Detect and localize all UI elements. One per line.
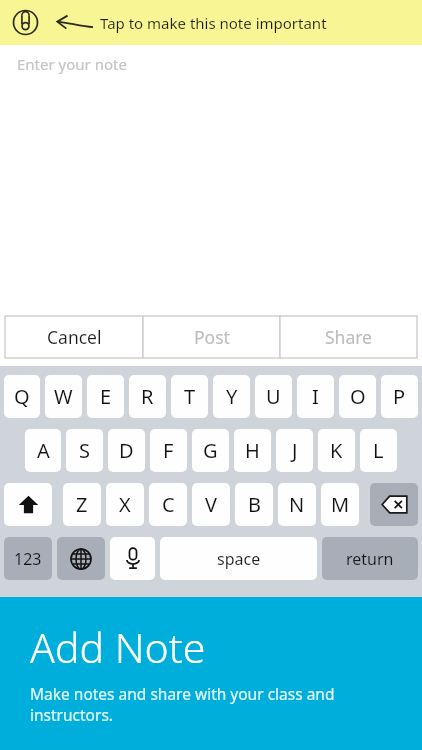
button[interactable]: S — [66, 429, 103, 472]
button[interactable]: Post — [143, 316, 280, 358]
button[interactable]: Switch keyboard language — [57, 537, 105, 580]
staticText: U — [266, 383, 281, 410]
staticText: I — [312, 383, 319, 410]
staticText: T — [184, 383, 196, 410]
button[interactable]: C — [149, 483, 187, 526]
button[interactable]: 123 — [4, 537, 52, 580]
button[interactable]: F — [150, 429, 187, 472]
button[interactable]: I — [297, 375, 334, 418]
staticText: return — [346, 548, 394, 570]
button[interactable]: M — [321, 483, 359, 526]
staticText: Add Note — [30, 619, 206, 675]
button[interactable]: X — [106, 483, 144, 526]
button[interactable]: K — [318, 429, 355, 472]
staticText: H — [245, 437, 260, 464]
button[interactable]: D — [108, 429, 145, 472]
button[interactable]: Mark note important — [0, 0, 422, 45]
button[interactable]: H — [234, 429, 271, 472]
staticText: Q — [14, 383, 30, 410]
staticText: B — [248, 491, 261, 518]
staticText: Post — [194, 325, 230, 349]
button[interactable]: B — [235, 483, 273, 526]
staticText: P — [393, 383, 406, 410]
staticText: Z — [76, 491, 88, 518]
staticText: C — [162, 491, 175, 518]
staticText: O — [350, 383, 366, 410]
staticText: V — [205, 491, 217, 518]
button[interactable]: L — [360, 429, 397, 472]
button[interactable]: Backspace — [370, 483, 418, 526]
staticText: space — [217, 548, 261, 570]
button[interactable]: space — [160, 537, 317, 580]
staticText: Enter your note — [17, 54, 127, 74]
staticText: Tap to make this note important — [100, 13, 327, 33]
button[interactable]: W — [45, 375, 82, 418]
button[interactable]: Shift — [4, 483, 52, 526]
button[interactable]: V — [192, 483, 230, 526]
button[interactable]: U — [255, 375, 292, 418]
staticText: Y — [226, 383, 238, 410]
staticText: L — [373, 437, 384, 464]
staticText: M — [331, 491, 350, 518]
button[interactable]: P — [381, 375, 418, 418]
staticText: F — [163, 437, 174, 464]
button[interactable]: Y — [213, 375, 250, 418]
button[interactable]: Z — [63, 483, 101, 526]
button[interactable]: E — [87, 375, 124, 418]
staticText: A — [37, 437, 50, 464]
staticText: X — [119, 491, 131, 518]
button[interactable]: T — [171, 375, 208, 418]
button[interactable]: A — [25, 429, 61, 472]
button[interactable]: G — [192, 429, 229, 472]
staticText: R — [141, 383, 154, 410]
button[interactable]: N — [278, 483, 316, 526]
button[interactable]: Q — [4, 375, 40, 418]
staticText: S — [79, 437, 90, 464]
staticText: Cancel — [47, 325, 102, 349]
staticText: D — [119, 437, 134, 464]
staticText: W — [54, 383, 73, 410]
staticText: J — [292, 437, 298, 464]
button[interactable]: Cancel — [5, 316, 143, 358]
button[interactable]: return — [322, 537, 418, 580]
staticText: E — [100, 383, 112, 410]
staticText: N — [289, 491, 305, 518]
button[interactable]: J — [276, 429, 313, 472]
staticText: 123 — [14, 548, 42, 570]
other: Mark note important — [12, 9, 39, 36]
button[interactable]: O — [339, 375, 376, 418]
button[interactable]: Voice input — [110, 537, 155, 580]
button[interactable]: Share — [280, 316, 417, 358]
staticText: Share — [325, 325, 372, 349]
button[interactable]: R — [129, 375, 166, 418]
staticText: Make notes and share with your class and… — [30, 683, 396, 726]
staticText: G — [203, 437, 218, 464]
staticText: K — [330, 437, 343, 464]
